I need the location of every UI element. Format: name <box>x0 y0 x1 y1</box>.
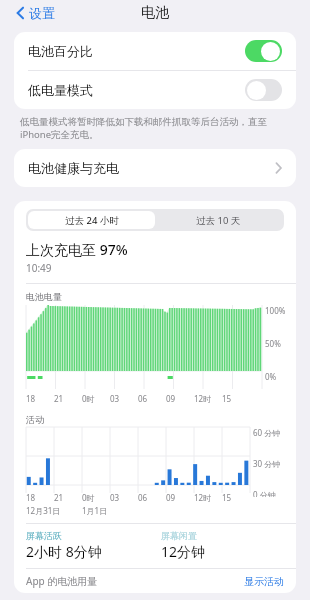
button[interactable]: 电池健康与充电 <box>14 149 296 187</box>
staticText: 显示活动 <box>244 575 284 588</box>
staticText: 2小时 8分钟 <box>26 542 102 561</box>
staticText: 18 <box>26 393 36 404</box>
button[interactable]: Off <box>245 79 282 101</box>
staticText: 06 <box>138 393 148 404</box>
staticText: 15 <box>222 492 232 503</box>
staticText: 电池 <box>141 4 169 22</box>
staticText: 100% <box>265 305 286 316</box>
button[interactable]: 电池百分比 <box>14 32 296 70</box>
staticText: 09 <box>166 492 176 503</box>
staticText: 12月31日 <box>26 505 61 516</box>
staticText: 21 <box>54 492 64 503</box>
button[interactable]: App 的电池用量 <box>14 569 296 593</box>
staticText: 30 分钟 <box>253 458 281 469</box>
staticText: 低电量模式 <box>28 82 93 98</box>
staticText: 上次充电至 97% <box>26 240 128 259</box>
staticText: 50% <box>265 338 281 349</box>
staticText: 过去 24 小时 <box>65 214 119 227</box>
staticText: 06 <box>138 492 148 503</box>
staticText: 设置 <box>29 5 55 21</box>
button[interactable]: On <box>245 40 282 62</box>
staticText: 03 <box>110 492 120 503</box>
staticText: 屏幕闲置 <box>161 530 197 541</box>
staticText: 12分钟 <box>161 542 206 561</box>
staticText: 12时 <box>194 492 212 503</box>
staticText: 电池健康与充电 <box>28 160 119 176</box>
staticText: 0时 <box>82 492 95 503</box>
button[interactable]: 过去 24 小时 <box>28 211 155 229</box>
staticText: 09 <box>166 393 176 404</box>
staticText: 屏幕活跃 <box>26 530 62 541</box>
staticText: 0时 <box>82 393 95 404</box>
staticText: 0% <box>265 371 277 382</box>
button[interactable]: 过去 10 天 <box>155 211 282 229</box>
staticText: 过去 10 天 <box>196 214 241 227</box>
staticText: 15 <box>222 393 232 404</box>
button[interactable]: 设置 <box>14 3 57 23</box>
staticText: 0 分钟 <box>253 489 276 497</box>
staticText: 03 <box>110 393 120 404</box>
staticText: App 的电池用量 <box>26 574 98 588</box>
staticText: 电池百分比 <box>28 43 93 59</box>
staticText: 电池电量 <box>26 291 62 302</box>
staticText: 活动 <box>26 414 44 425</box>
staticText: 低电量模式将暂时降低如下载和邮件抓取等后台活动，直至 iPhone完全充电。 <box>20 116 267 141</box>
staticText: 60 分钟 <box>253 427 281 438</box>
staticText: 1月1日 <box>82 505 108 516</box>
staticText: 21 <box>54 393 64 404</box>
staticText: 12时 <box>194 393 212 404</box>
staticText: 10:49 <box>26 261 52 275</box>
button[interactable]: 低电量模式 <box>14 71 296 109</box>
staticText: 18 <box>26 492 36 503</box>
